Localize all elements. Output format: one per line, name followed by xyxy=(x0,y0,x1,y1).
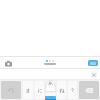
button[interactable] xyxy=(44,60,56,65)
button[interactable]: Character preview xyxy=(44,78,57,92)
button[interactable]: ま xyxy=(23,81,33,99)
button[interactable]: ？ xyxy=(68,81,77,99)
button[interactable]: Undo xyxy=(1,81,21,99)
button[interactable]: Send xyxy=(88,60,98,66)
button[interactable]: Backspace xyxy=(79,81,99,99)
staticText: に xyxy=(37,87,43,93)
button[interactable]: Selected key xyxy=(45,96,56,100)
staticText: あ xyxy=(48,80,53,85)
staticText: ね xyxy=(59,87,65,93)
staticText: ま xyxy=(25,87,31,93)
button[interactable]: Camera xyxy=(3,58,13,68)
staticText: ？ xyxy=(70,87,75,93)
button[interactable]: に xyxy=(35,81,44,99)
button[interactable] xyxy=(46,81,55,99)
button[interactable]: ね xyxy=(57,81,66,99)
button[interactable]: Close xyxy=(91,72,97,78)
